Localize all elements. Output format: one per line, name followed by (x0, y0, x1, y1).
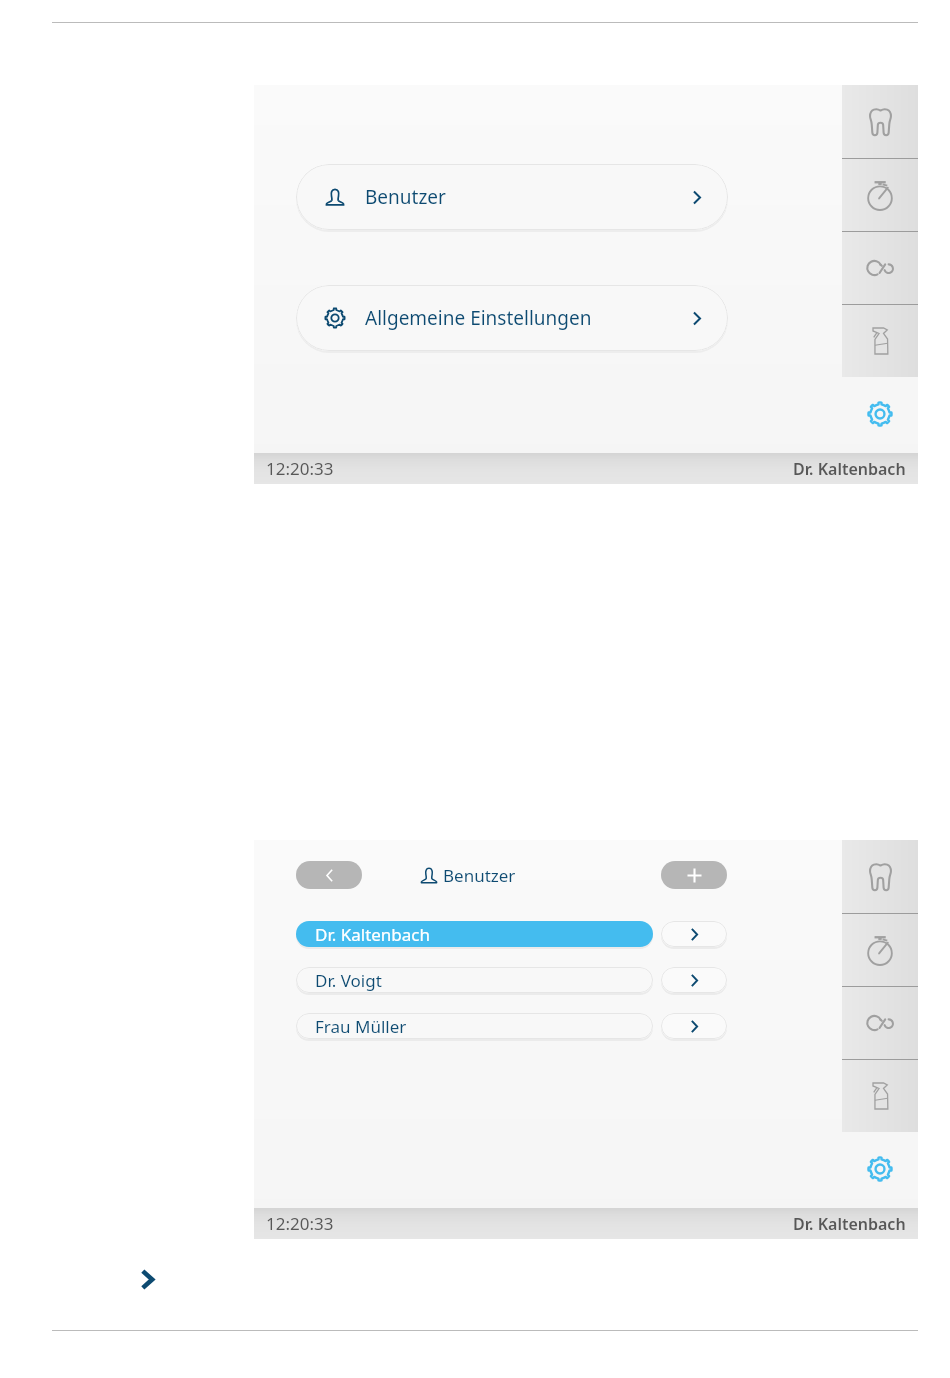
button[interactable]: Endo (842, 232, 918, 304)
staticText: Benutzer (443, 864, 516, 887)
button[interactable]: Teeth (842, 840, 918, 913)
button[interactable]: Allgemeine Einstellungen (296, 285, 728, 351)
button[interactable]: Next page (130, 1262, 164, 1296)
button[interactable]: Timer (842, 159, 918, 231)
staticText: Dr. Voigt (315, 969, 382, 992)
button[interactable]: Open Frau Müller (661, 1013, 727, 1039)
button[interactable]: Benutzer (296, 164, 728, 230)
button[interactable]: Clean (842, 305, 918, 377)
button[interactable]: Settings (842, 1132, 918, 1206)
button[interactable]: Timer (842, 914, 918, 986)
button[interactable]: Clean (842, 1060, 918, 1132)
staticText: Frau Müller (315, 1015, 407, 1038)
button[interactable]: Back (296, 861, 362, 889)
staticText: 12:20:33 (266, 457, 334, 480)
button[interactable]: Frau Müller (296, 1013, 653, 1039)
staticText: Benutzer (365, 184, 446, 210)
staticText: Dr. Kaltenbach (315, 923, 431, 946)
button[interactable]: Dr. Voigt (296, 967, 653, 993)
button[interactable]: Settings (842, 377, 918, 451)
button[interactable]: Teeth (842, 85, 918, 158)
button[interactable]: Add user (661, 861, 727, 889)
staticText: Dr. Kaltenbach (793, 1213, 906, 1235)
staticText: Allgemeine Einstellungen (365, 305, 592, 331)
staticText: Dr. Kaltenbach (793, 458, 906, 480)
button[interactable]: Open Dr. Kaltenbach (661, 921, 727, 947)
button[interactable]: Endo (842, 987, 918, 1059)
button[interactable]: Open Dr. Voigt (661, 967, 727, 993)
staticText: 12:20:33 (266, 1212, 334, 1235)
button[interactable]: Dr. Kaltenbach (296, 921, 653, 947)
